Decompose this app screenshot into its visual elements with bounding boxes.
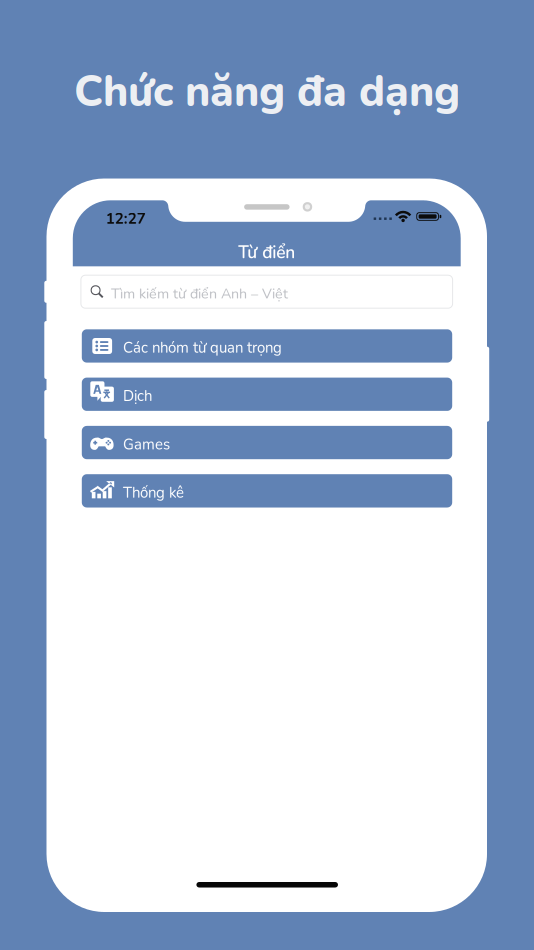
- staticText: 12:27: [106, 208, 146, 229]
- button[interactable]: Dịch: [82, 378, 452, 411]
- staticText: Games: [123, 434, 170, 455]
- button[interactable]: Các nhóm từ quan trọng: [82, 329, 452, 363]
- button[interactable]: Games: [82, 426, 452, 459]
- button[interactable]: Thống kê: [82, 474, 452, 507]
- staticText: Từ điển: [238, 241, 295, 264]
- staticText: Tìm kiếm từ điển Anh – Việt: [111, 284, 288, 304]
- staticText: Các nhóm từ quan trọng: [123, 338, 282, 358]
- staticText: Thống kê: [123, 483, 184, 503]
- staticText: Dịch: [123, 386, 152, 406]
- staticText: Chức năng đa dạng: [74, 63, 460, 121]
- button[interactable]: Tìm kiếm từ điển Anh – Việt: [81, 275, 453, 308]
